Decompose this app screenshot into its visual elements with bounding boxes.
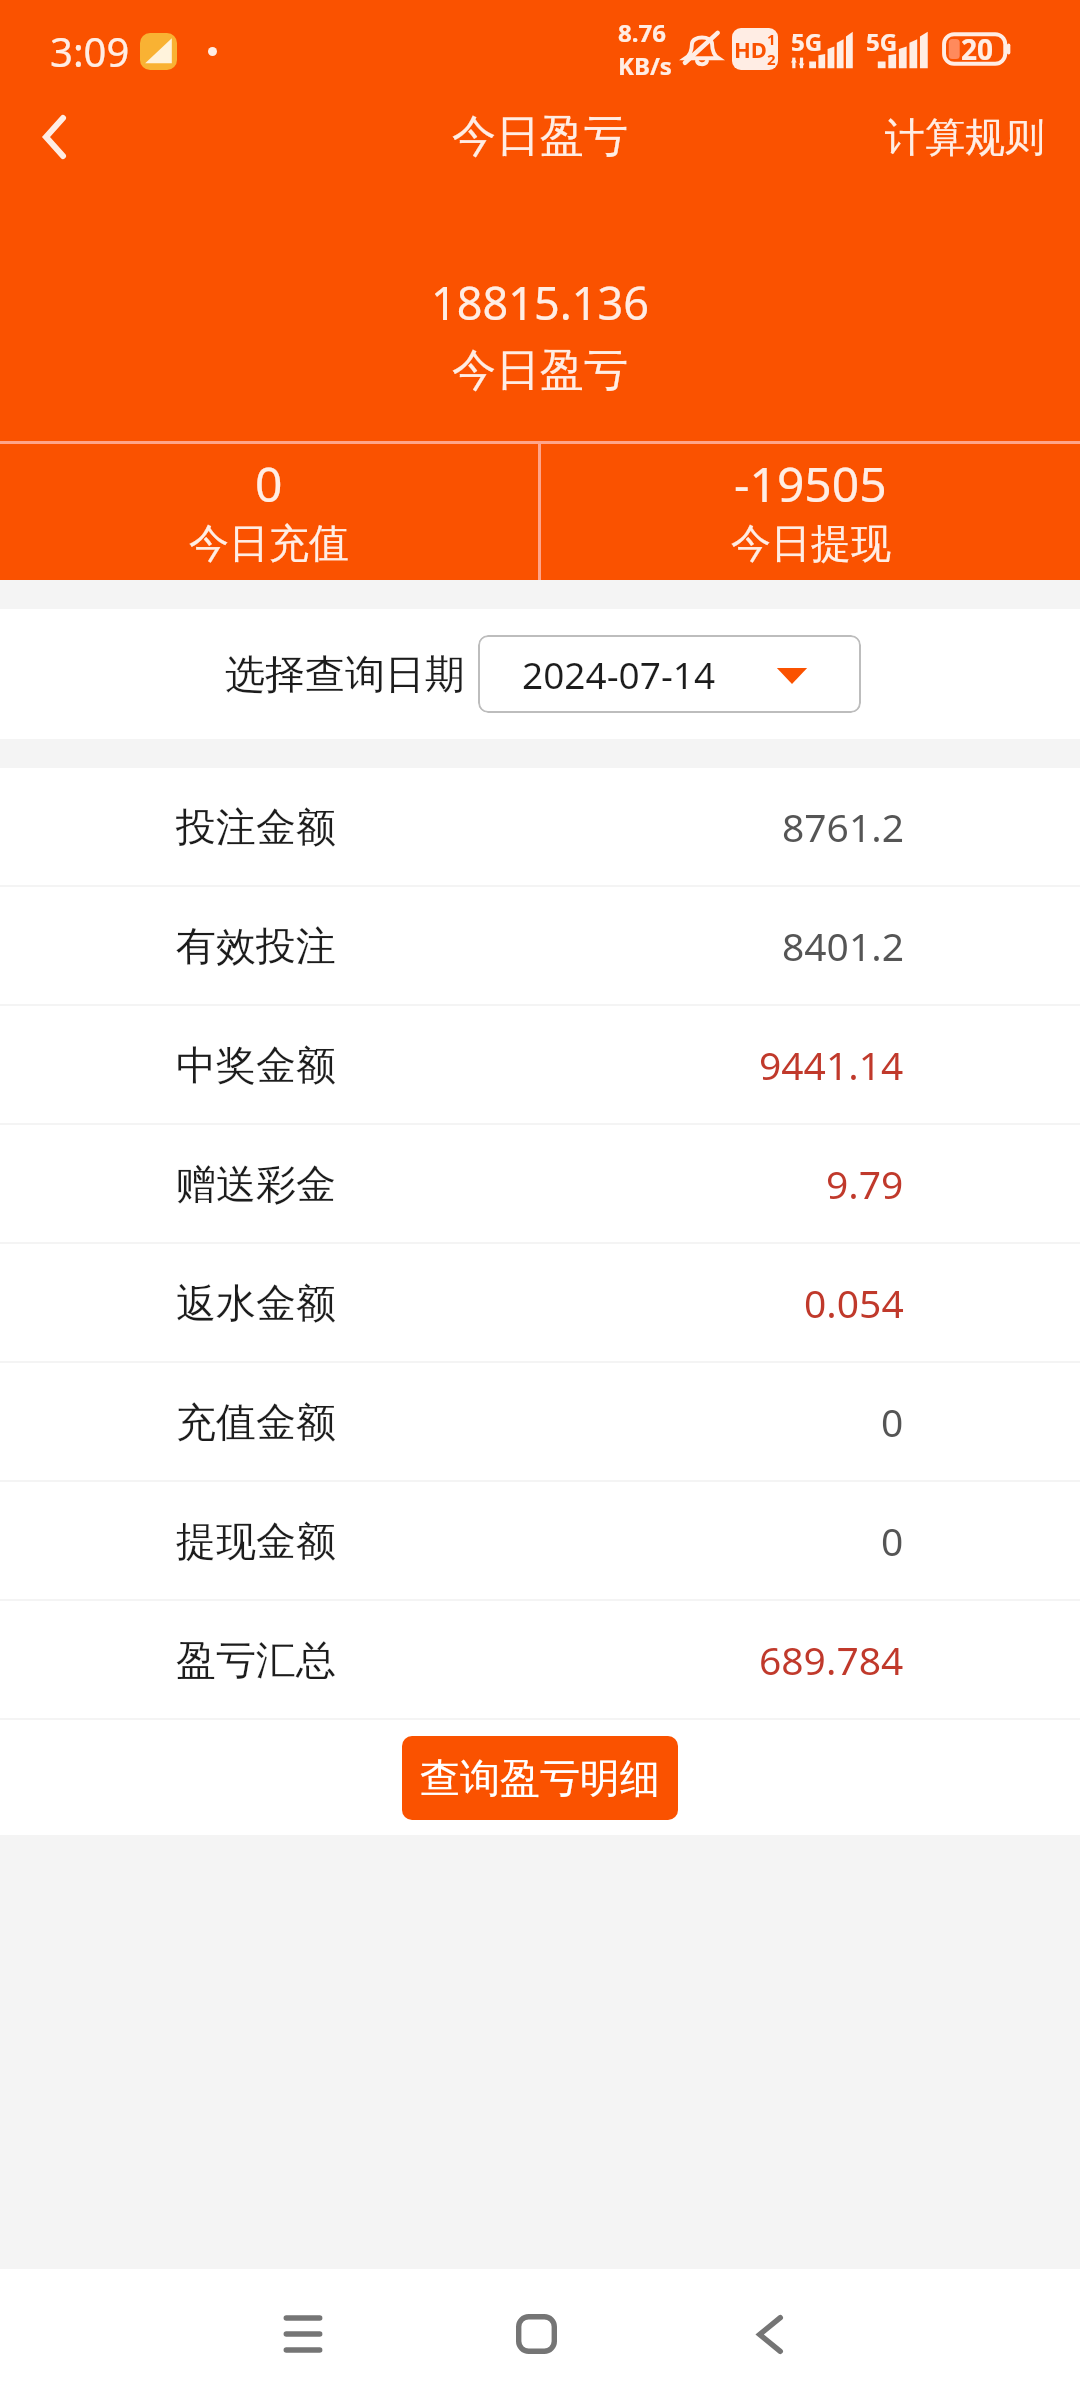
staticText: 5G — [866, 25, 898, 58]
staticText: 返水金额 — [176, 1278, 336, 1328]
staticText: 5G — [791, 25, 823, 58]
staticText: 今日盈亏 — [0, 343, 1080, 398]
staticText: 2 — [767, 49, 776, 69]
staticText: 0.054 — [804, 1276, 904, 1329]
staticText: HD — [734, 34, 767, 64]
staticText: 今日充值 — [189, 518, 349, 568]
staticText: 今日提现 — [731, 518, 891, 568]
staticText: 3:09 — [50, 24, 130, 78]
staticText: 2024-07-14 — [522, 649, 716, 699]
button[interactable]: 投注金额 — [0, 768, 1080, 885]
staticText: 8401.2 — [782, 919, 904, 972]
staticText: 0 — [255, 451, 283, 516]
staticText: 1 — [767, 29, 776, 49]
button[interactable]: 返水金额 — [0, 1244, 1080, 1361]
button[interactable]: 查询盈亏明细 — [402, 1736, 678, 1820]
staticText: 投注金额 — [176, 802, 336, 852]
button[interactable]: Home — [476, 2294, 596, 2374]
button[interactable]: 2024-07-14 — [478, 635, 861, 713]
staticText: 有效投注 — [176, 921, 336, 971]
staticText: 0 — [881, 1514, 904, 1567]
staticText: 选择查询日期 — [225, 649, 465, 699]
staticText: -19505 — [734, 451, 887, 516]
staticText: 0 — [881, 1395, 904, 1448]
button[interactable]: 充值金额 — [0, 1363, 1080, 1480]
staticText: 查询盈亏明细 — [420, 1753, 660, 1803]
staticText: 18815.136 — [0, 272, 1080, 333]
staticText: 赠送彩金 — [176, 1159, 336, 1209]
button[interactable]: 提现金额 — [0, 1482, 1080, 1599]
staticText: 中奖金额 — [176, 1040, 336, 1090]
button[interactable]: Back — [710, 2294, 830, 2374]
staticText: 计算规则 — [885, 112, 1045, 162]
button[interactable]: 计算规则 — [845, 88, 1080, 185]
staticText: 提现金额 — [176, 1516, 336, 1566]
staticText: 今日盈亏 — [452, 109, 628, 164]
button[interactable]: 有效投注 — [0, 887, 1080, 1004]
button[interactable]: 中奖金额 — [0, 1006, 1080, 1123]
staticText: 8.76 — [618, 16, 666, 49]
staticText: 9.79 — [826, 1157, 904, 1210]
staticText: 盈亏汇总 — [176, 1635, 336, 1685]
staticText: 8761.2 — [782, 800, 904, 853]
staticText: KB/s — [618, 49, 672, 82]
button[interactable]: 盈亏汇总 — [0, 1601, 1080, 1718]
staticText: 充值金额 — [176, 1397, 336, 1447]
button[interactable]: Back — [0, 88, 108, 185]
button[interactable]: 赠送彩金 — [0, 1125, 1080, 1242]
button[interactable]: -19505 — [541, 444, 1080, 580]
staticText: 9441.14 — [759, 1038, 904, 1091]
button[interactable]: Recent apps — [243, 2294, 363, 2374]
staticText: 20 — [961, 30, 994, 68]
staticText: 689.784 — [759, 1633, 904, 1686]
button[interactable]: 0 — [0, 444, 538, 580]
